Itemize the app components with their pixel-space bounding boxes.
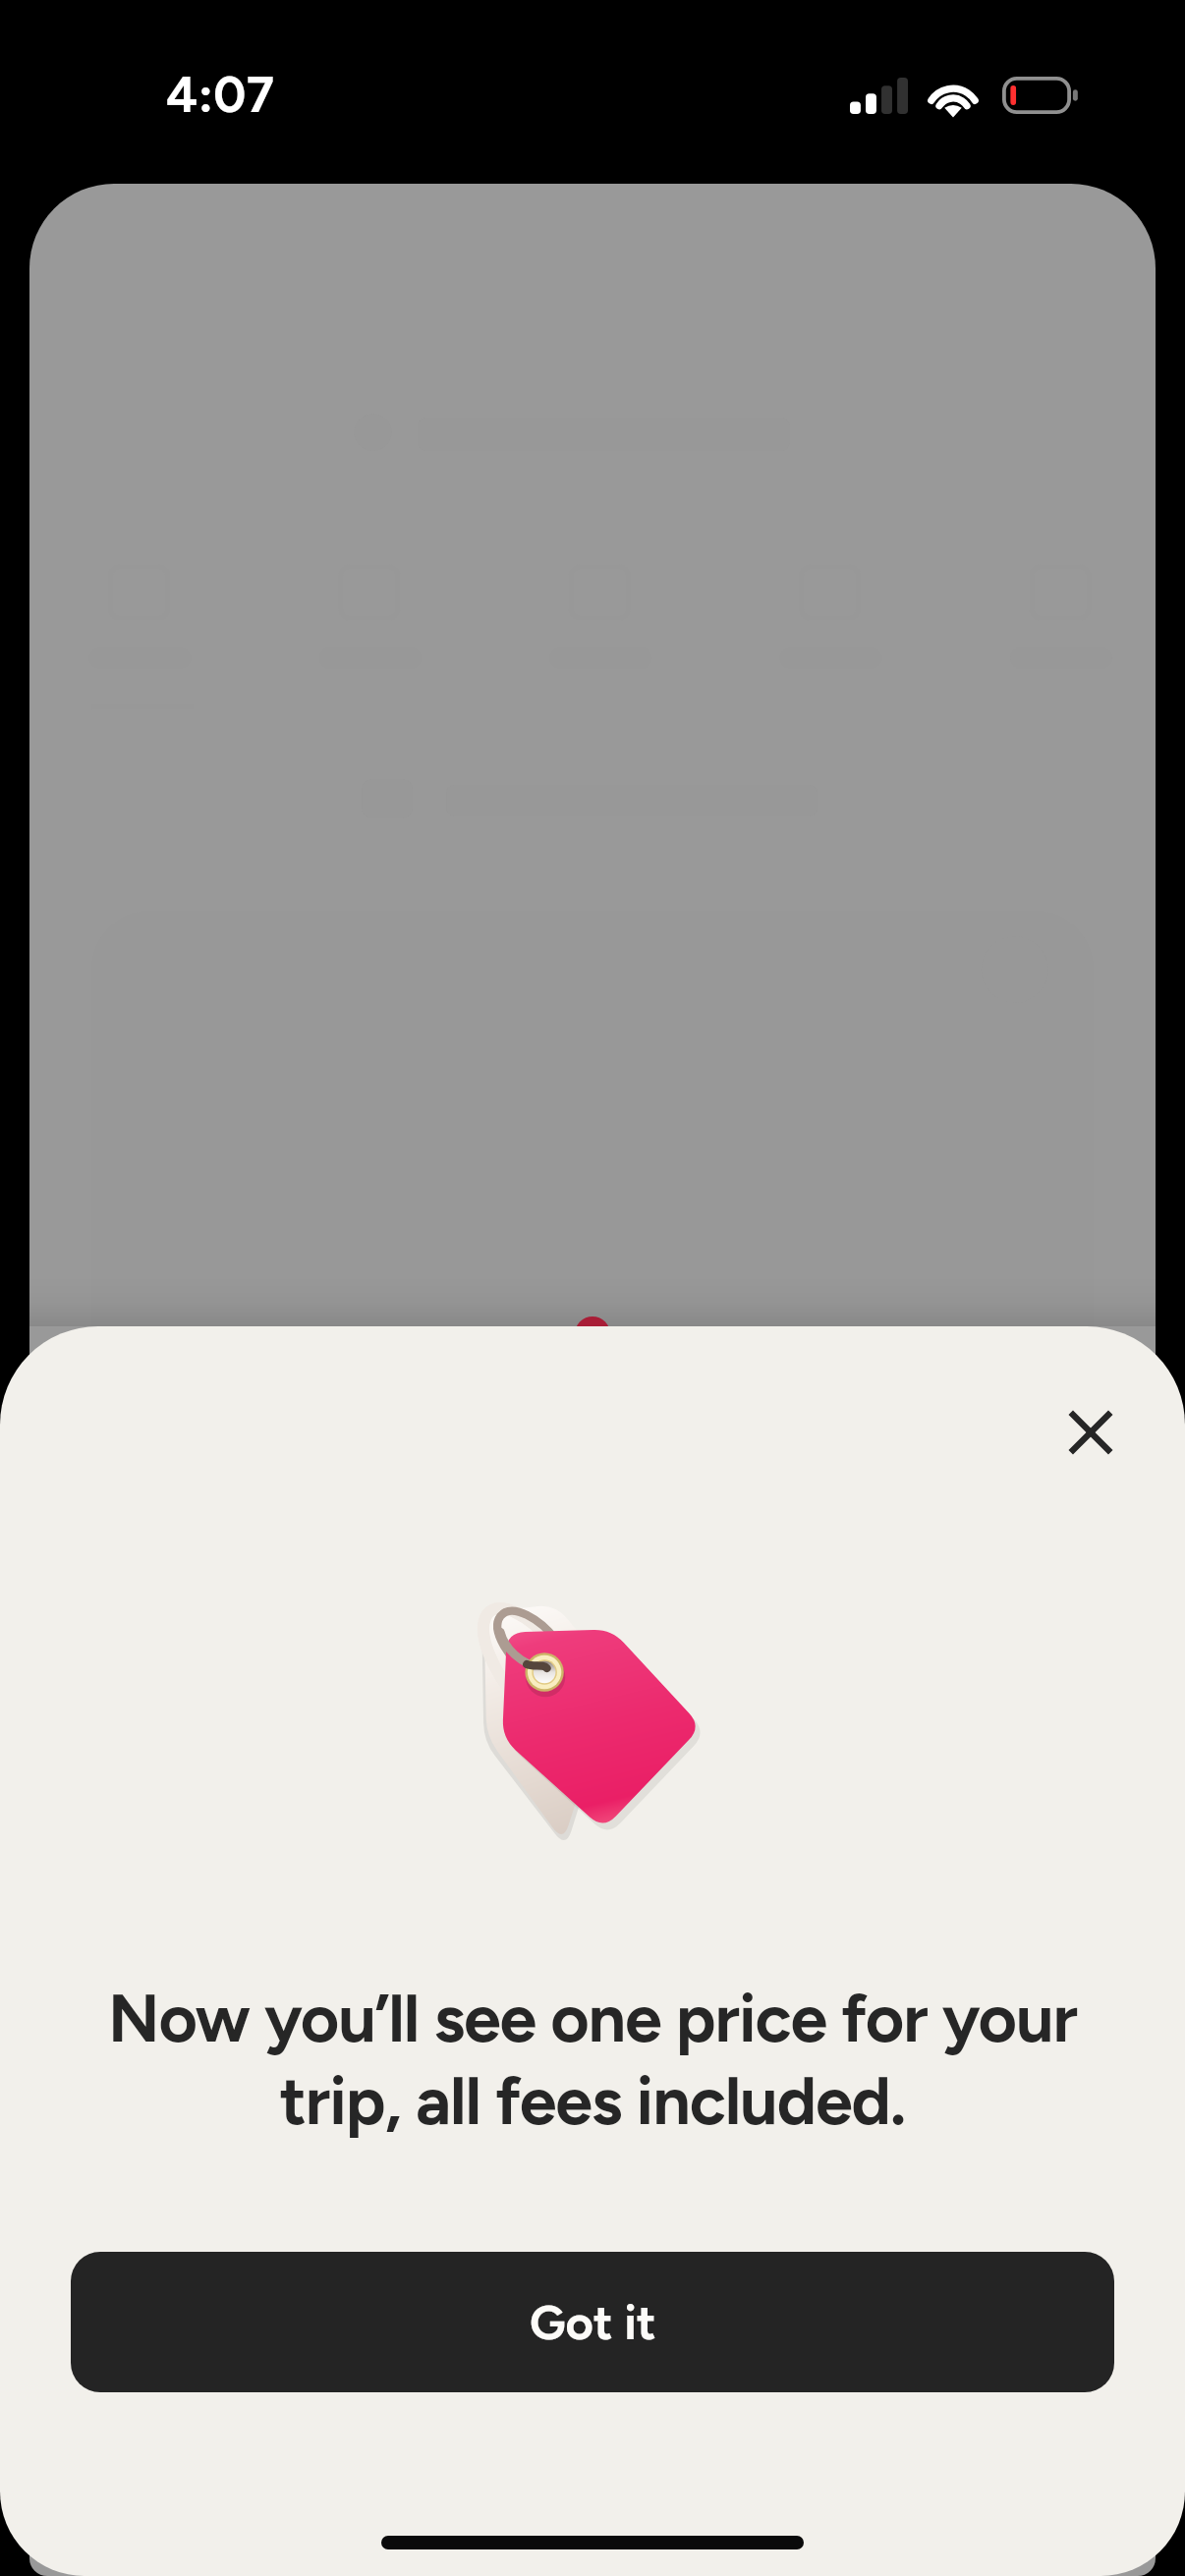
button[interactable]: Close: [1040, 1381, 1142, 1484]
staticText: 4:07: [166, 65, 275, 125]
button[interactable]: Got it: [71, 2252, 1114, 2392]
staticText: Now you’ll see one price for your trip, …: [45, 1978, 1140, 2141]
staticText: Got it: [530, 2293, 656, 2351]
